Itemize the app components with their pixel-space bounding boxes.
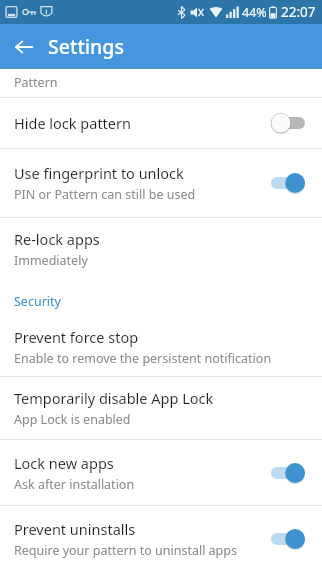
- button[interactable]: Re-lock apps: [0, 218, 322, 280]
- button[interactable]: Toggle on: [270, 460, 306, 486]
- staticText: Hide lock pattern: [14, 113, 131, 133]
- staticText: Ask after installation: [14, 476, 135, 493]
- button[interactable]: Pattern: [0, 69, 322, 97]
- button[interactable]: Prevent force stop: [0, 318, 322, 376]
- staticText: Use fingerprint to unlock: [14, 163, 184, 183]
- button[interactable]: Toggle off: [270, 110, 306, 136]
- staticText: Enable to remove the persistent notifica…: [14, 350, 272, 367]
- staticText: Lock new apps: [14, 453, 114, 473]
- staticText: Re-lock apps: [14, 229, 100, 249]
- staticText: App Lock is enabled: [14, 411, 131, 428]
- staticText: Security: [14, 293, 61, 310]
- staticText: Prevent uninstalls: [14, 519, 136, 539]
- button[interactable]: Toggle on: [270, 170, 306, 196]
- button[interactable]: Use fingerprint to unlock: [0, 149, 322, 217]
- staticText: Prevent force stop: [14, 327, 139, 347]
- staticText: Require your pattern to uninstall apps: [14, 542, 237, 559]
- button[interactable]: Hide lock pattern: [0, 98, 322, 148]
- staticText: 44%: [242, 4, 267, 21]
- staticText: Settings: [48, 33, 124, 60]
- staticText: PIN or Pattern can still be used: [14, 186, 196, 203]
- button[interactable]: Back: [6, 29, 42, 65]
- staticText: 22:07: [281, 3, 316, 21]
- button[interactable]: Toggle on: [270, 526, 306, 552]
- button[interactable]: Prevent uninstalls: [0, 506, 322, 571]
- button[interactable]: Lock new apps: [0, 440, 322, 505]
- staticText: Temporarily disable App Lock: [14, 388, 214, 408]
- button[interactable]: Temporarily disable App Lock: [0, 377, 322, 439]
- staticText: Pattern: [14, 74, 58, 91]
- staticText: Immediately: [14, 252, 88, 269]
